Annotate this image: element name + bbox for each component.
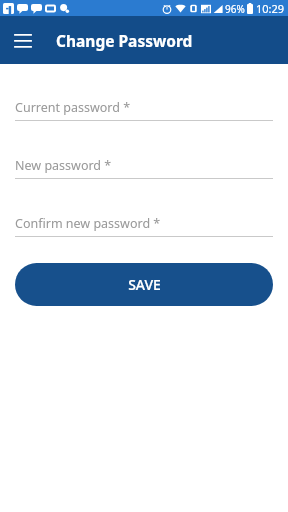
staticText: Change Password — [56, 30, 193, 51]
staticText: New password * — [15, 157, 112, 174]
button[interactable]: New password * — [15, 152, 273, 178]
button[interactable]: Current password * — [15, 94, 273, 120]
staticText: Current password * — [15, 99, 131, 116]
button[interactable]: Confirm new password * — [15, 210, 273, 236]
staticText: 96% — [225, 2, 245, 16]
button[interactable]: SAVE — [15, 263, 273, 306]
staticText: 10:29 — [256, 1, 285, 16]
staticText: Confirm new password * — [15, 215, 161, 232]
button[interactable]: Open navigation menu — [6, 23, 40, 57]
staticText: SAVE — [128, 275, 161, 294]
